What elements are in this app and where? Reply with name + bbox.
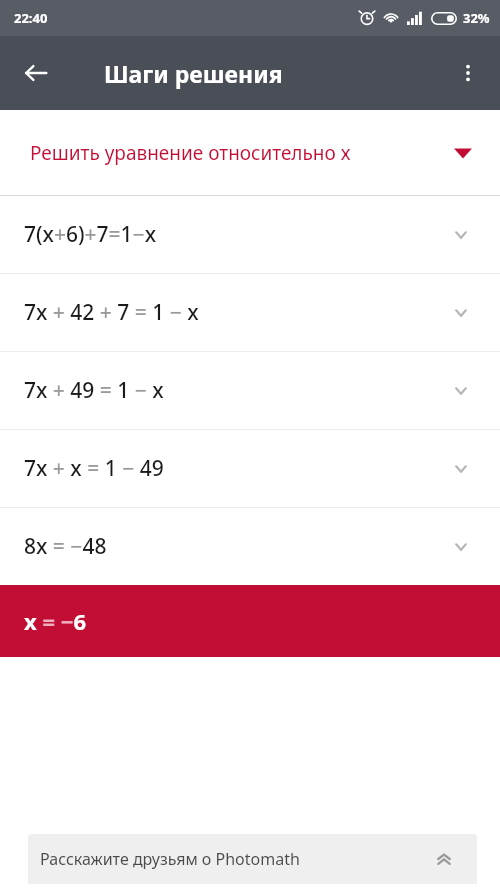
button[interactable]: Решить уравнение относительно х (0, 110, 500, 195)
button[interactable]: x = −6 (0, 585, 500, 657)
staticText: 7x + 49 = 1 − x (24, 376, 164, 405)
button[interactable]: Back (12, 49, 60, 97)
button[interactable]: Расскажите друзьям о Photomath (28, 834, 477, 884)
staticText: Шаги решения (104, 58, 283, 89)
button[interactable]: 8x = −48 (0, 508, 500, 585)
staticText: 7x + 42 + 7 = 1 − x (24, 298, 199, 327)
staticText: 7x + x = 1 − 49 (24, 454, 164, 483)
button[interactable]: 7x + 49 = 1 − x (0, 352, 500, 429)
staticText: 22:40 (14, 9, 48, 27)
staticText: 8x = −48 (24, 532, 107, 561)
button[interactable]: 7(x+6)+7=1−x (0, 196, 500, 273)
staticText: 7(x+6)+7=1−x (24, 220, 157, 249)
staticText: 32% (463, 9, 490, 27)
button[interactable]: 7x + x = 1 − 49 (0, 430, 500, 507)
staticText: Решить уравнение относительно х (30, 140, 351, 166)
button[interactable]: More options (444, 49, 492, 97)
staticText: x = −6 (24, 606, 87, 636)
button[interactable]: 7x + 42 + 7 = 1 − x (0, 274, 500, 351)
staticText: Расскажите друзьям о Photomath (40, 848, 300, 870)
